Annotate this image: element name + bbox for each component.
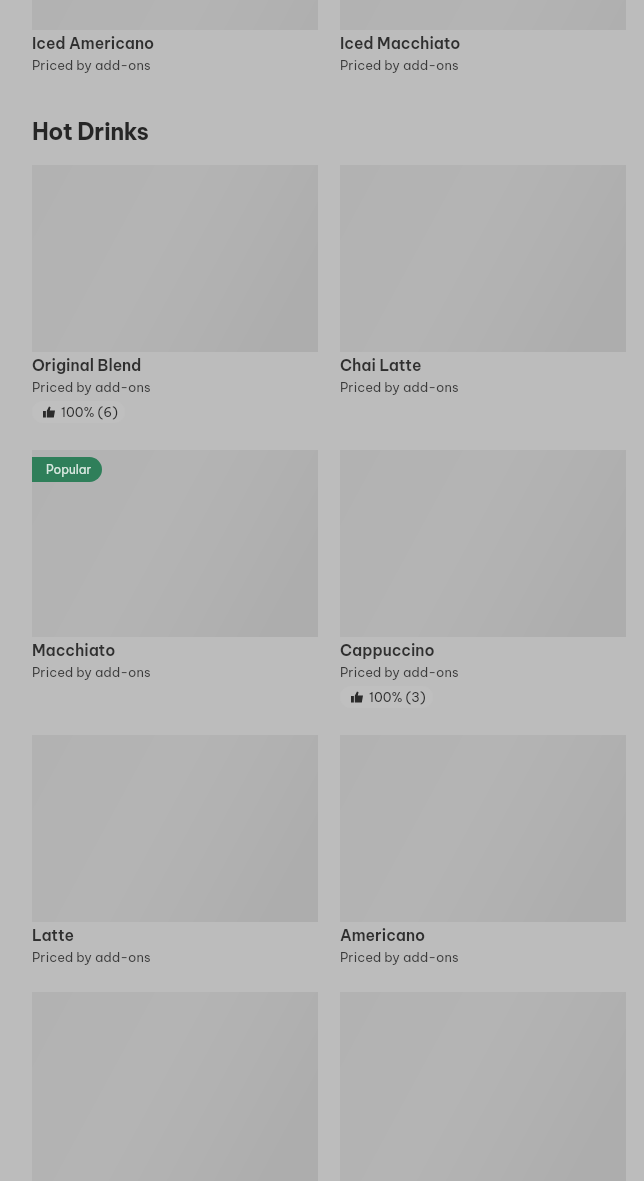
staticText: Priced by add-ons	[32, 57, 151, 73]
staticText: Original Blend	[32, 355, 142, 375]
button[interactable]: Latte	[32, 735, 318, 965]
staticText: Iced Americano	[32, 33, 155, 53]
staticText: Priced by add-ons	[340, 664, 459, 680]
staticText: Macchiato	[32, 640, 116, 660]
button[interactable]: Popular	[32, 450, 318, 680]
staticText: 100% (3)	[369, 689, 426, 705]
staticText: Priced by add-ons	[32, 379, 151, 395]
staticText: Americano	[340, 925, 426, 945]
button[interactable]: 100% (3)	[340, 686, 433, 708]
button[interactable]: Cappuccino	[340, 450, 626, 708]
button[interactable]: Chai Latte	[340, 165, 626, 395]
staticText: Chai Latte	[340, 355, 422, 375]
button[interactable]: Iced Macchiato	[340, 0, 626, 73]
button[interactable]: 100% (6)	[32, 401, 125, 423]
staticText: Popular	[46, 462, 92, 477]
button[interactable]: Hot Drinks	[32, 117, 149, 146]
staticText: Priced by add-ons	[340, 379, 459, 395]
staticText: 100% (6)	[61, 404, 118, 420]
staticText: Iced Macchiato	[340, 33, 461, 53]
staticText: Cappuccino	[340, 640, 435, 660]
button[interactable]: Popular	[32, 457, 102, 482]
staticText: Priced by add-ons	[340, 949, 459, 965]
button[interactable]: Original Blend	[32, 165, 318, 423]
button[interactable]: Americano	[340, 735, 626, 965]
staticText: Latte	[32, 925, 74, 945]
button[interactable]: Iced Americano	[32, 0, 318, 73]
staticText: Priced by add-ons	[32, 664, 151, 680]
staticText: Priced by add-ons	[32, 949, 151, 965]
staticText: Priced by add-ons	[340, 57, 459, 73]
